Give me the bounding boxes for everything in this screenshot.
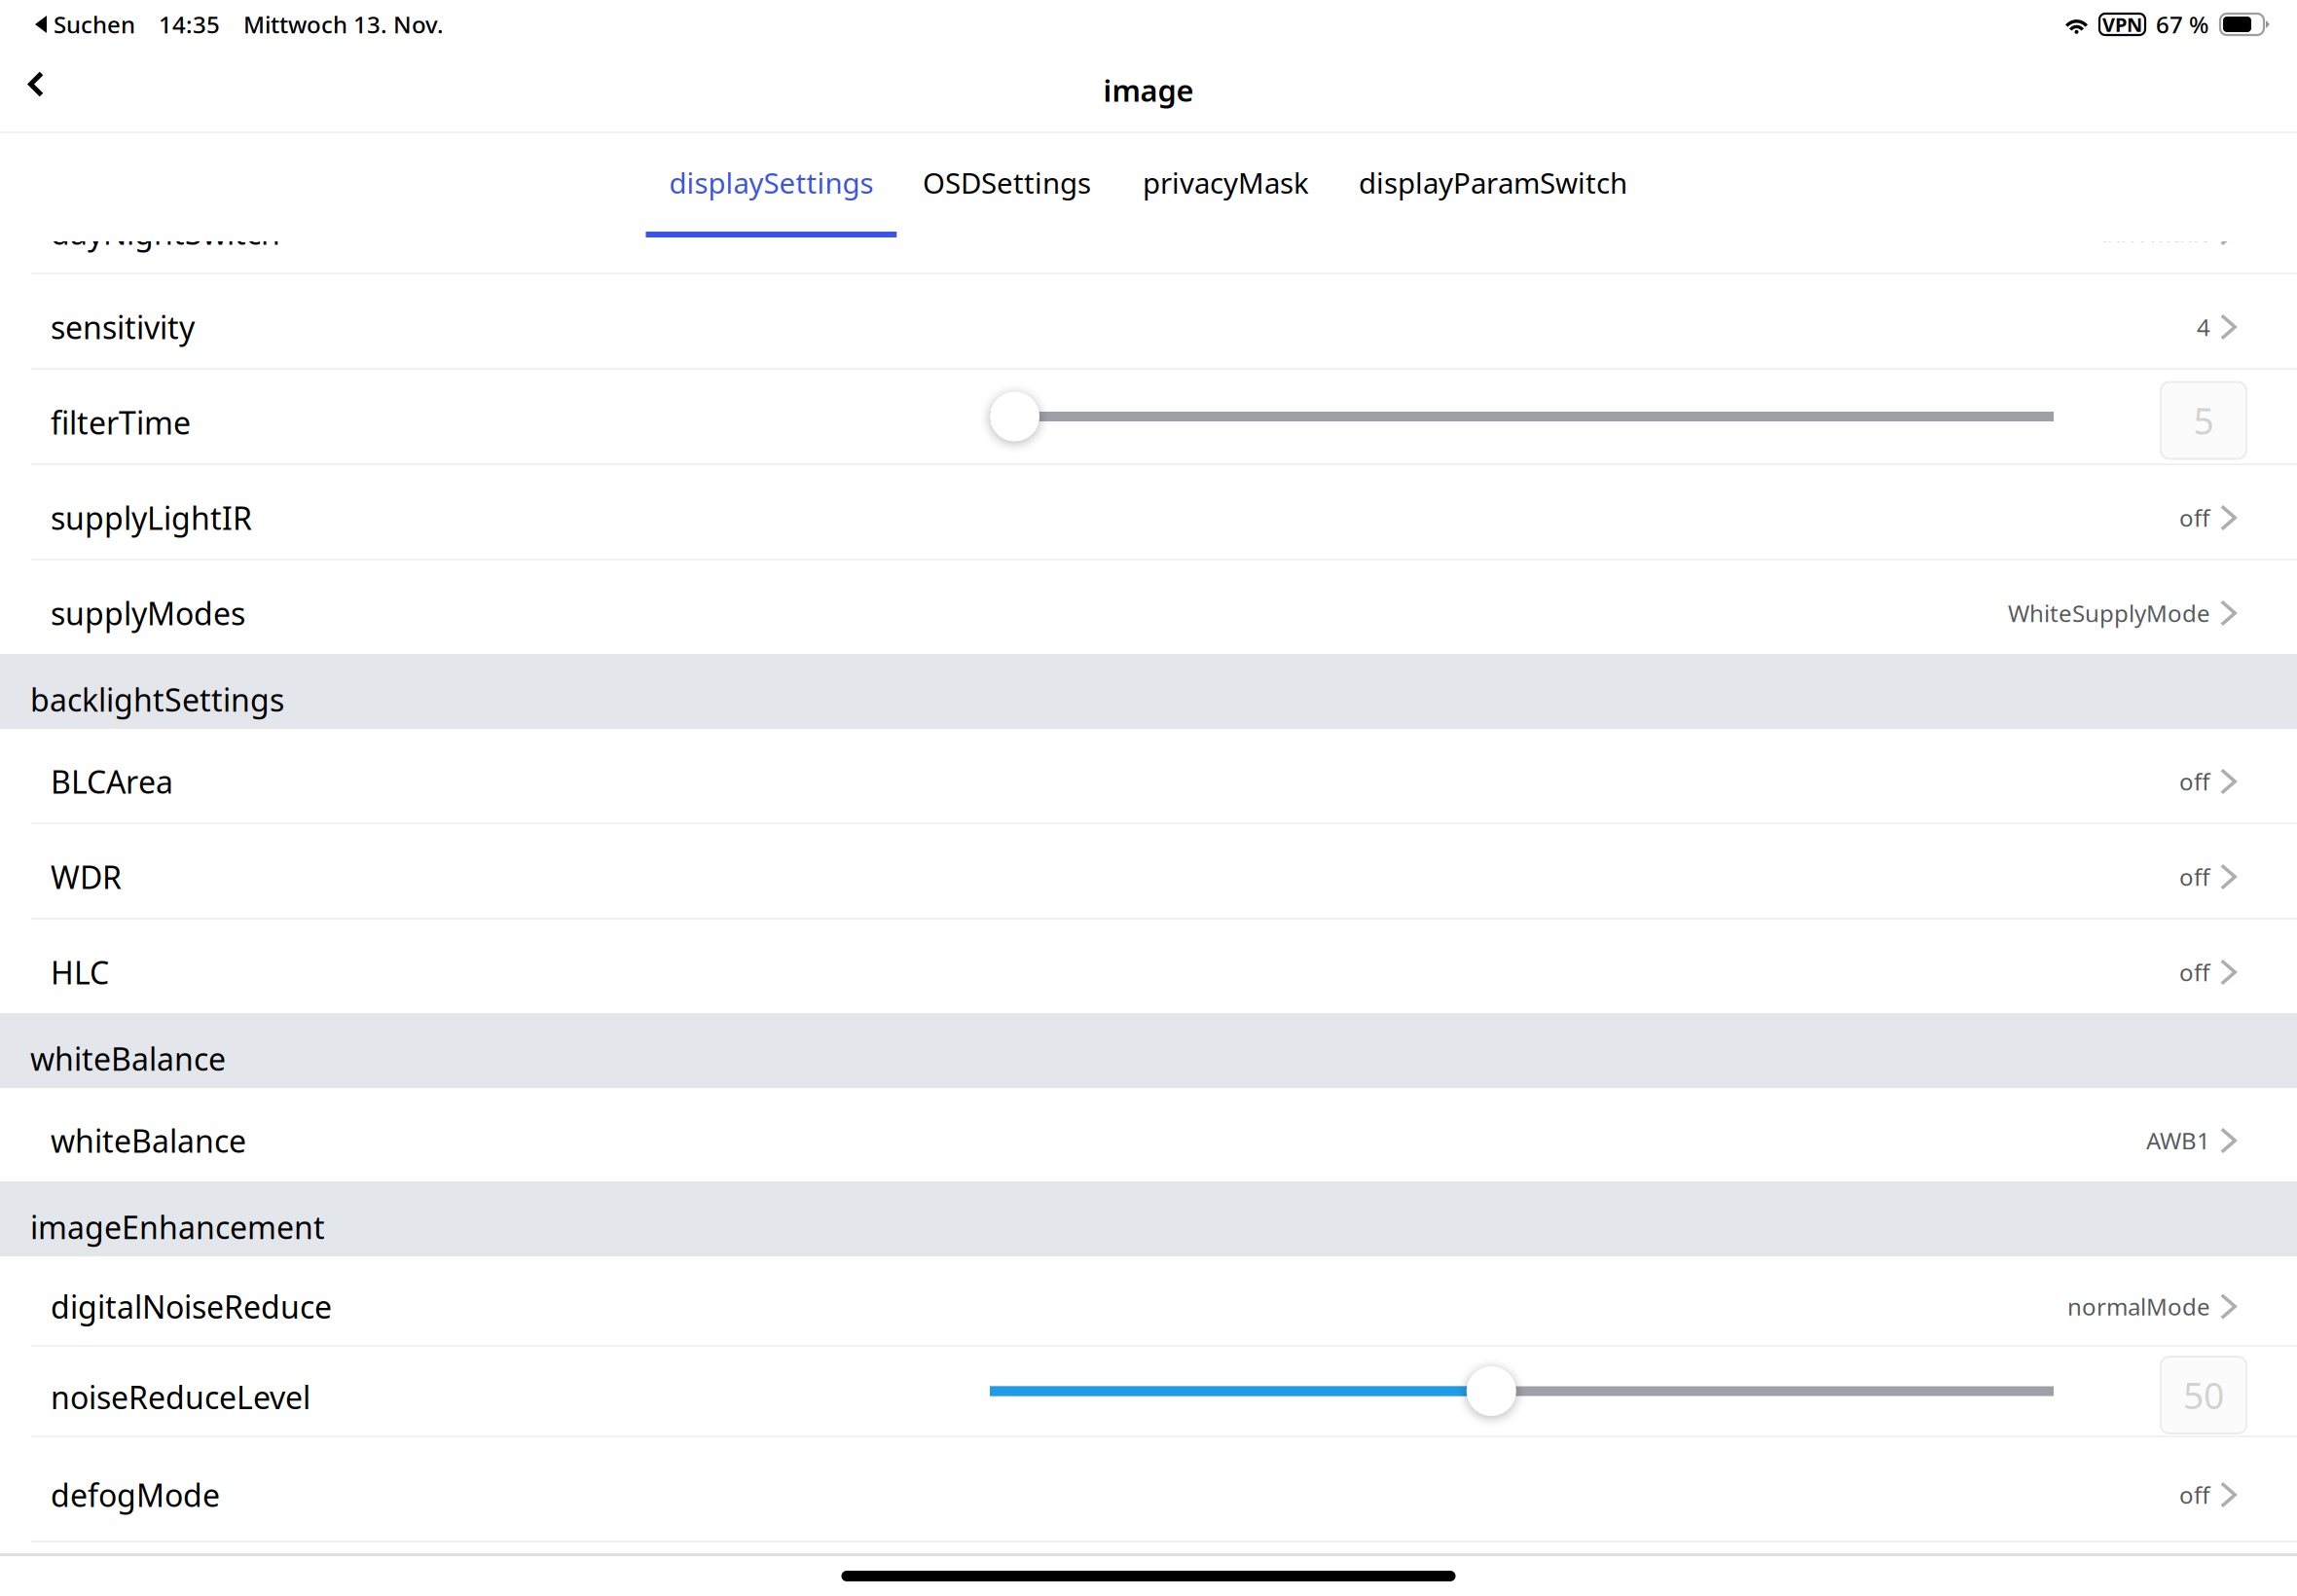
staticText: automatic <box>2099 217 2210 248</box>
staticText: VPN <box>2102 11 2142 37</box>
staticText: displaySettings <box>669 163 874 201</box>
button[interactable]: supplyLightIR <box>0 465 2297 559</box>
staticText: backlightSettings <box>30 679 284 720</box>
staticText: imageEnhancement <box>30 1206 325 1248</box>
staticText: AWB1 <box>2146 1125 2210 1156</box>
staticText: noiseReduceLevel <box>51 1376 310 1418</box>
staticText: 50 <box>2183 1371 2224 1419</box>
staticText: HLC <box>51 952 109 993</box>
staticText: off <box>2179 502 2210 533</box>
button[interactable]: whiteBalance <box>0 1088 2297 1181</box>
button[interactable]: displayParamSwitch <box>1335 133 1651 237</box>
staticText: Mittwoch 13. Nov. <box>243 9 444 40</box>
staticText: supplyLightIR <box>51 497 252 538</box>
staticText: normalMode <box>2067 1291 2210 1322</box>
staticText: off <box>2179 957 2210 988</box>
button[interactable]: privacyMask <box>1117 133 1335 237</box>
button[interactable]: OSDSettings <box>897 133 1117 237</box>
button[interactable]: WDR <box>0 824 2297 918</box>
staticText: WhiteSupplyMode <box>2008 598 2210 629</box>
staticText: privacyMask <box>1143 163 1309 201</box>
button[interactable]: Back <box>6 60 66 120</box>
staticText: filterTime <box>51 402 191 443</box>
button[interactable]: noiseReduceLevel slider <box>990 1344 2054 1438</box>
staticText: displayParamSwitch <box>1359 163 1627 201</box>
staticText: BLCArea <box>51 761 173 802</box>
staticText: off <box>2179 766 2210 797</box>
button[interactable]: sensitivity <box>0 274 2297 368</box>
staticText: OSDSettings <box>923 163 1091 201</box>
button[interactable]: HLC <box>0 920 2297 1013</box>
button[interactable]: BLCArea <box>0 729 2297 822</box>
staticText: sensitivity <box>51 306 195 348</box>
staticText: 5 <box>2193 396 2214 445</box>
staticText: off <box>2179 861 2210 892</box>
button[interactable]: supplyModes <box>0 561 2297 654</box>
staticText: off <box>2179 1479 2210 1510</box>
staticText: dayNightSwitch <box>51 212 280 253</box>
staticText: whiteBalance <box>30 1038 226 1079</box>
staticText: defogMode <box>51 1474 220 1516</box>
button[interactable]: digitalNoiseReduce <box>0 1256 2297 1345</box>
staticText: whiteBalance <box>51 1120 246 1161</box>
staticText: WDR <box>51 856 122 898</box>
staticText: Suchen <box>54 9 135 40</box>
staticText: 4 <box>2197 312 2210 343</box>
button[interactable]: dayNightSwitch <box>0 179 2297 272</box>
button[interactable]: filterTime slider <box>990 370 2054 463</box>
staticText: digitalNoiseReduce <box>51 1286 332 1327</box>
staticText: supplyModes <box>51 592 245 634</box>
button[interactable]: displaySettings <box>646 133 897 237</box>
staticText: image <box>1103 70 1194 110</box>
staticText: 14:35 <box>159 9 220 40</box>
button[interactable]: defogMode <box>0 1437 2297 1541</box>
staticText: 67 % <box>2156 9 2208 40</box>
